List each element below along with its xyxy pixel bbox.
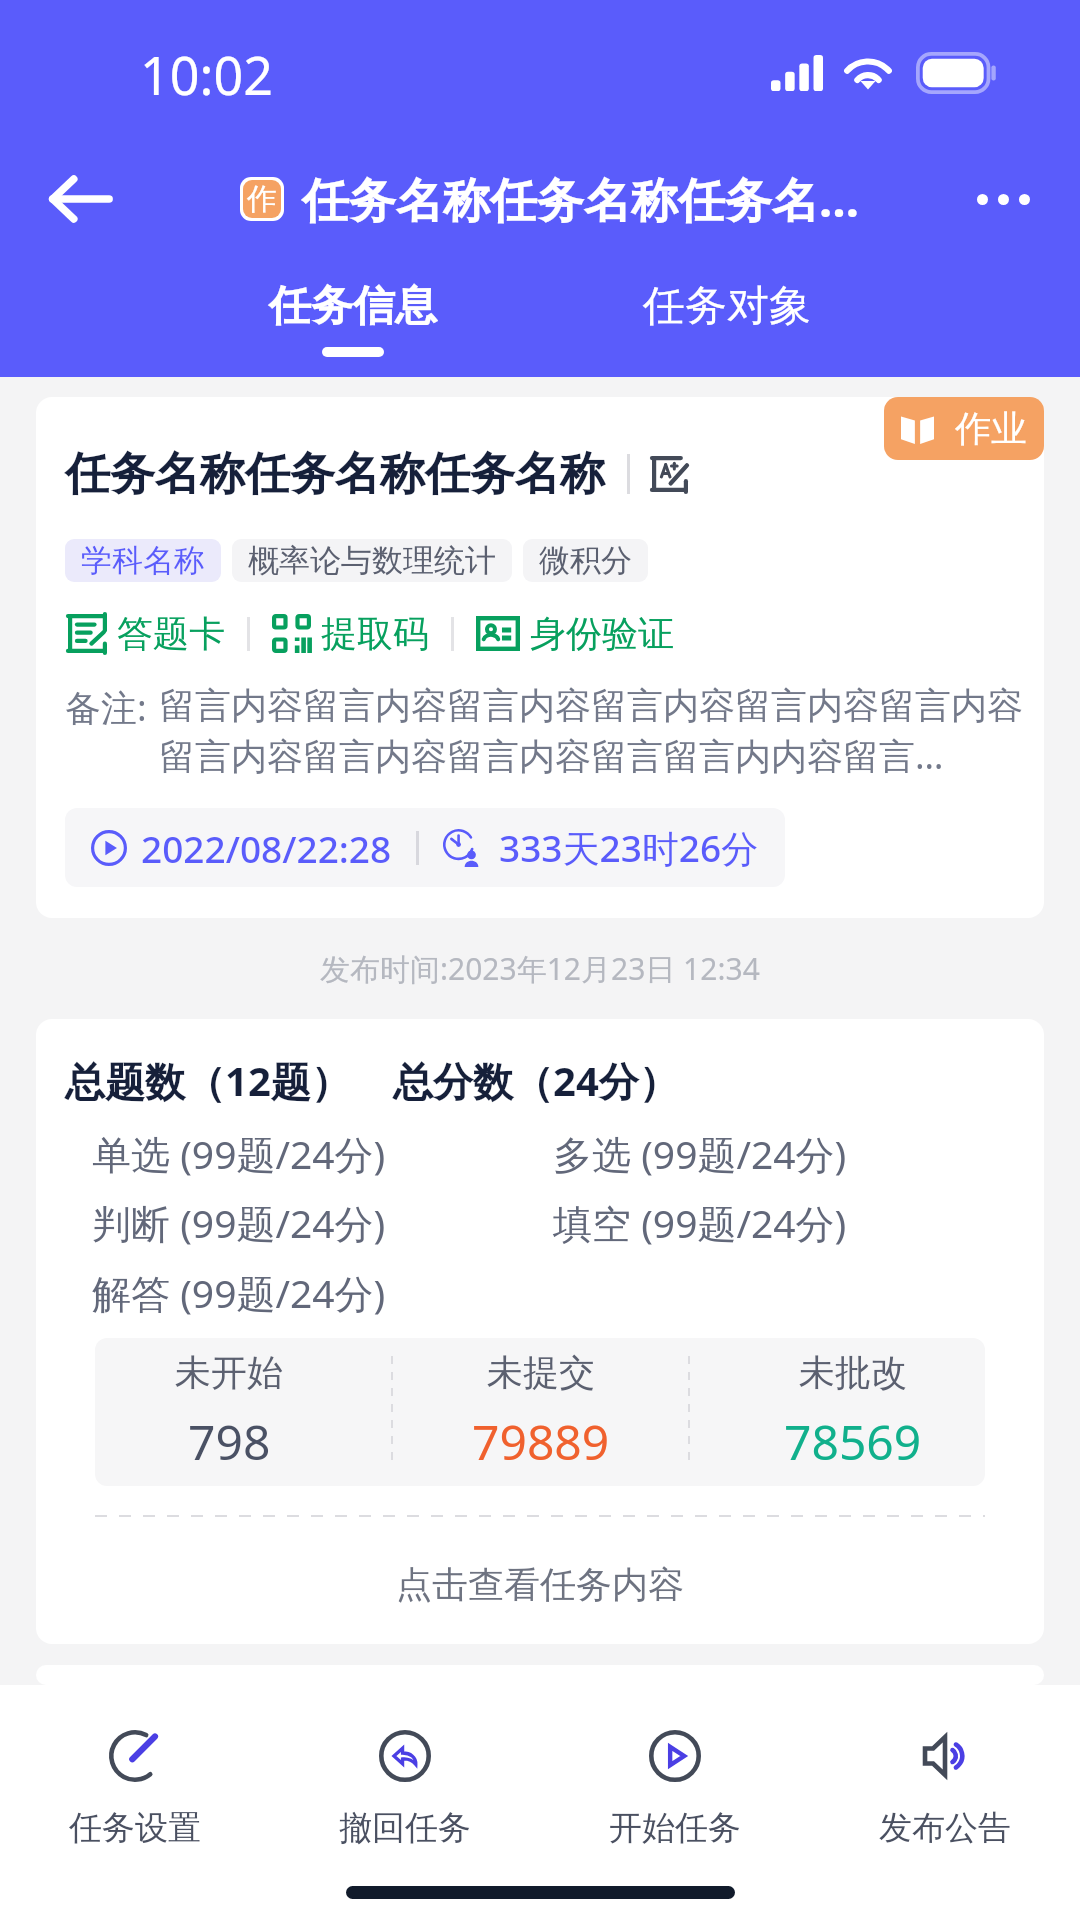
button[interactable]: Edit score (652, 456, 688, 492)
staticText: 身份验证 (530, 611, 674, 656)
staticText: 开始任务 (609, 1807, 741, 1849)
button[interactable]: 总题数（12题） (36, 1019, 1044, 1644)
button[interactable]: 身份验证 (476, 607, 674, 660)
button[interactable]: 提取码 (272, 607, 429, 660)
button[interactable]: Back (28, 147, 132, 251)
staticText: 作业 (955, 406, 1027, 451)
button[interactable]: 答题卡 (68, 607, 225, 660)
button[interactable]: 开始任务 (540, 1723, 810, 1855)
staticText: 学科名称 (81, 541, 205, 580)
button[interactable]: 发布公告 (810, 1723, 1080, 1855)
staticText: 填空 (99题/24分) (553, 1196, 847, 1249)
staticText: 任务名称任务名称任务名… (302, 167, 860, 231)
button[interactable]: 任务名称任务名称任务名称 (36, 397, 1044, 918)
staticText: 任务对象 (643, 280, 811, 333)
staticText: 撤回任务 (339, 1807, 471, 1849)
staticText: 78569 (784, 1409, 922, 1474)
staticText: 任务设置 (69, 1807, 201, 1849)
staticText: 答题卡 (117, 611, 225, 656)
staticText: 点击查看任务内容 (396, 1562, 684, 1607)
staticText: 79889 (472, 1409, 610, 1474)
staticText: 2022/08/22:28 (141, 823, 392, 873)
staticText: 发布公告 (879, 1807, 1011, 1849)
staticText: 10:02 (140, 39, 273, 110)
staticText: 判断 (99题/24分) (92, 1196, 386, 1249)
button[interactable]: 任务对象 (633, 258, 820, 347)
staticText: 备注: (65, 683, 147, 732)
staticText: 提取码 (321, 611, 429, 656)
staticText: 概率论与数理统计 (248, 541, 496, 580)
staticText: 留言内容留言内容留言内容留言内容留言内容留言内容留言内容留言内容留言内容留言留言… (159, 683, 1026, 780)
button[interactable]: 撤回任务 (270, 1723, 540, 1855)
staticText: 798 (188, 1409, 271, 1474)
staticText: 多选 (99题/24分) (553, 1127, 847, 1180)
staticText: 任务名称任务名称任务名称 (65, 446, 605, 503)
staticText: 未开始 (175, 1350, 283, 1395)
staticText: 微积分 (539, 541, 632, 580)
staticText: 333天23时26分 (499, 822, 759, 873)
staticText: 单选 (99题/24分) (92, 1127, 386, 1180)
staticText: 作 (247, 180, 277, 218)
staticText: 总题数（12题） (65, 1053, 351, 1108)
button[interactable]: 任务信息 (259, 258, 446, 357)
staticText: 未批改 (799, 1350, 907, 1395)
staticText: 总分数（24分） (393, 1053, 679, 1108)
staticText: 任务信息 (269, 280, 437, 333)
button[interactable]: More options (951, 147, 1055, 251)
staticText: 发布时间:2023年12月23日 12:34 (320, 948, 760, 989)
button[interactable]: 任务设置 (0, 1723, 270, 1855)
button[interactable]: 点击查看任务内容 (36, 1524, 1044, 1644)
staticText: 解答 (99题/24分) (92, 1266, 386, 1319)
staticText: 未提交 (487, 1350, 595, 1395)
button[interactable]: 作业 (884, 397, 1044, 460)
